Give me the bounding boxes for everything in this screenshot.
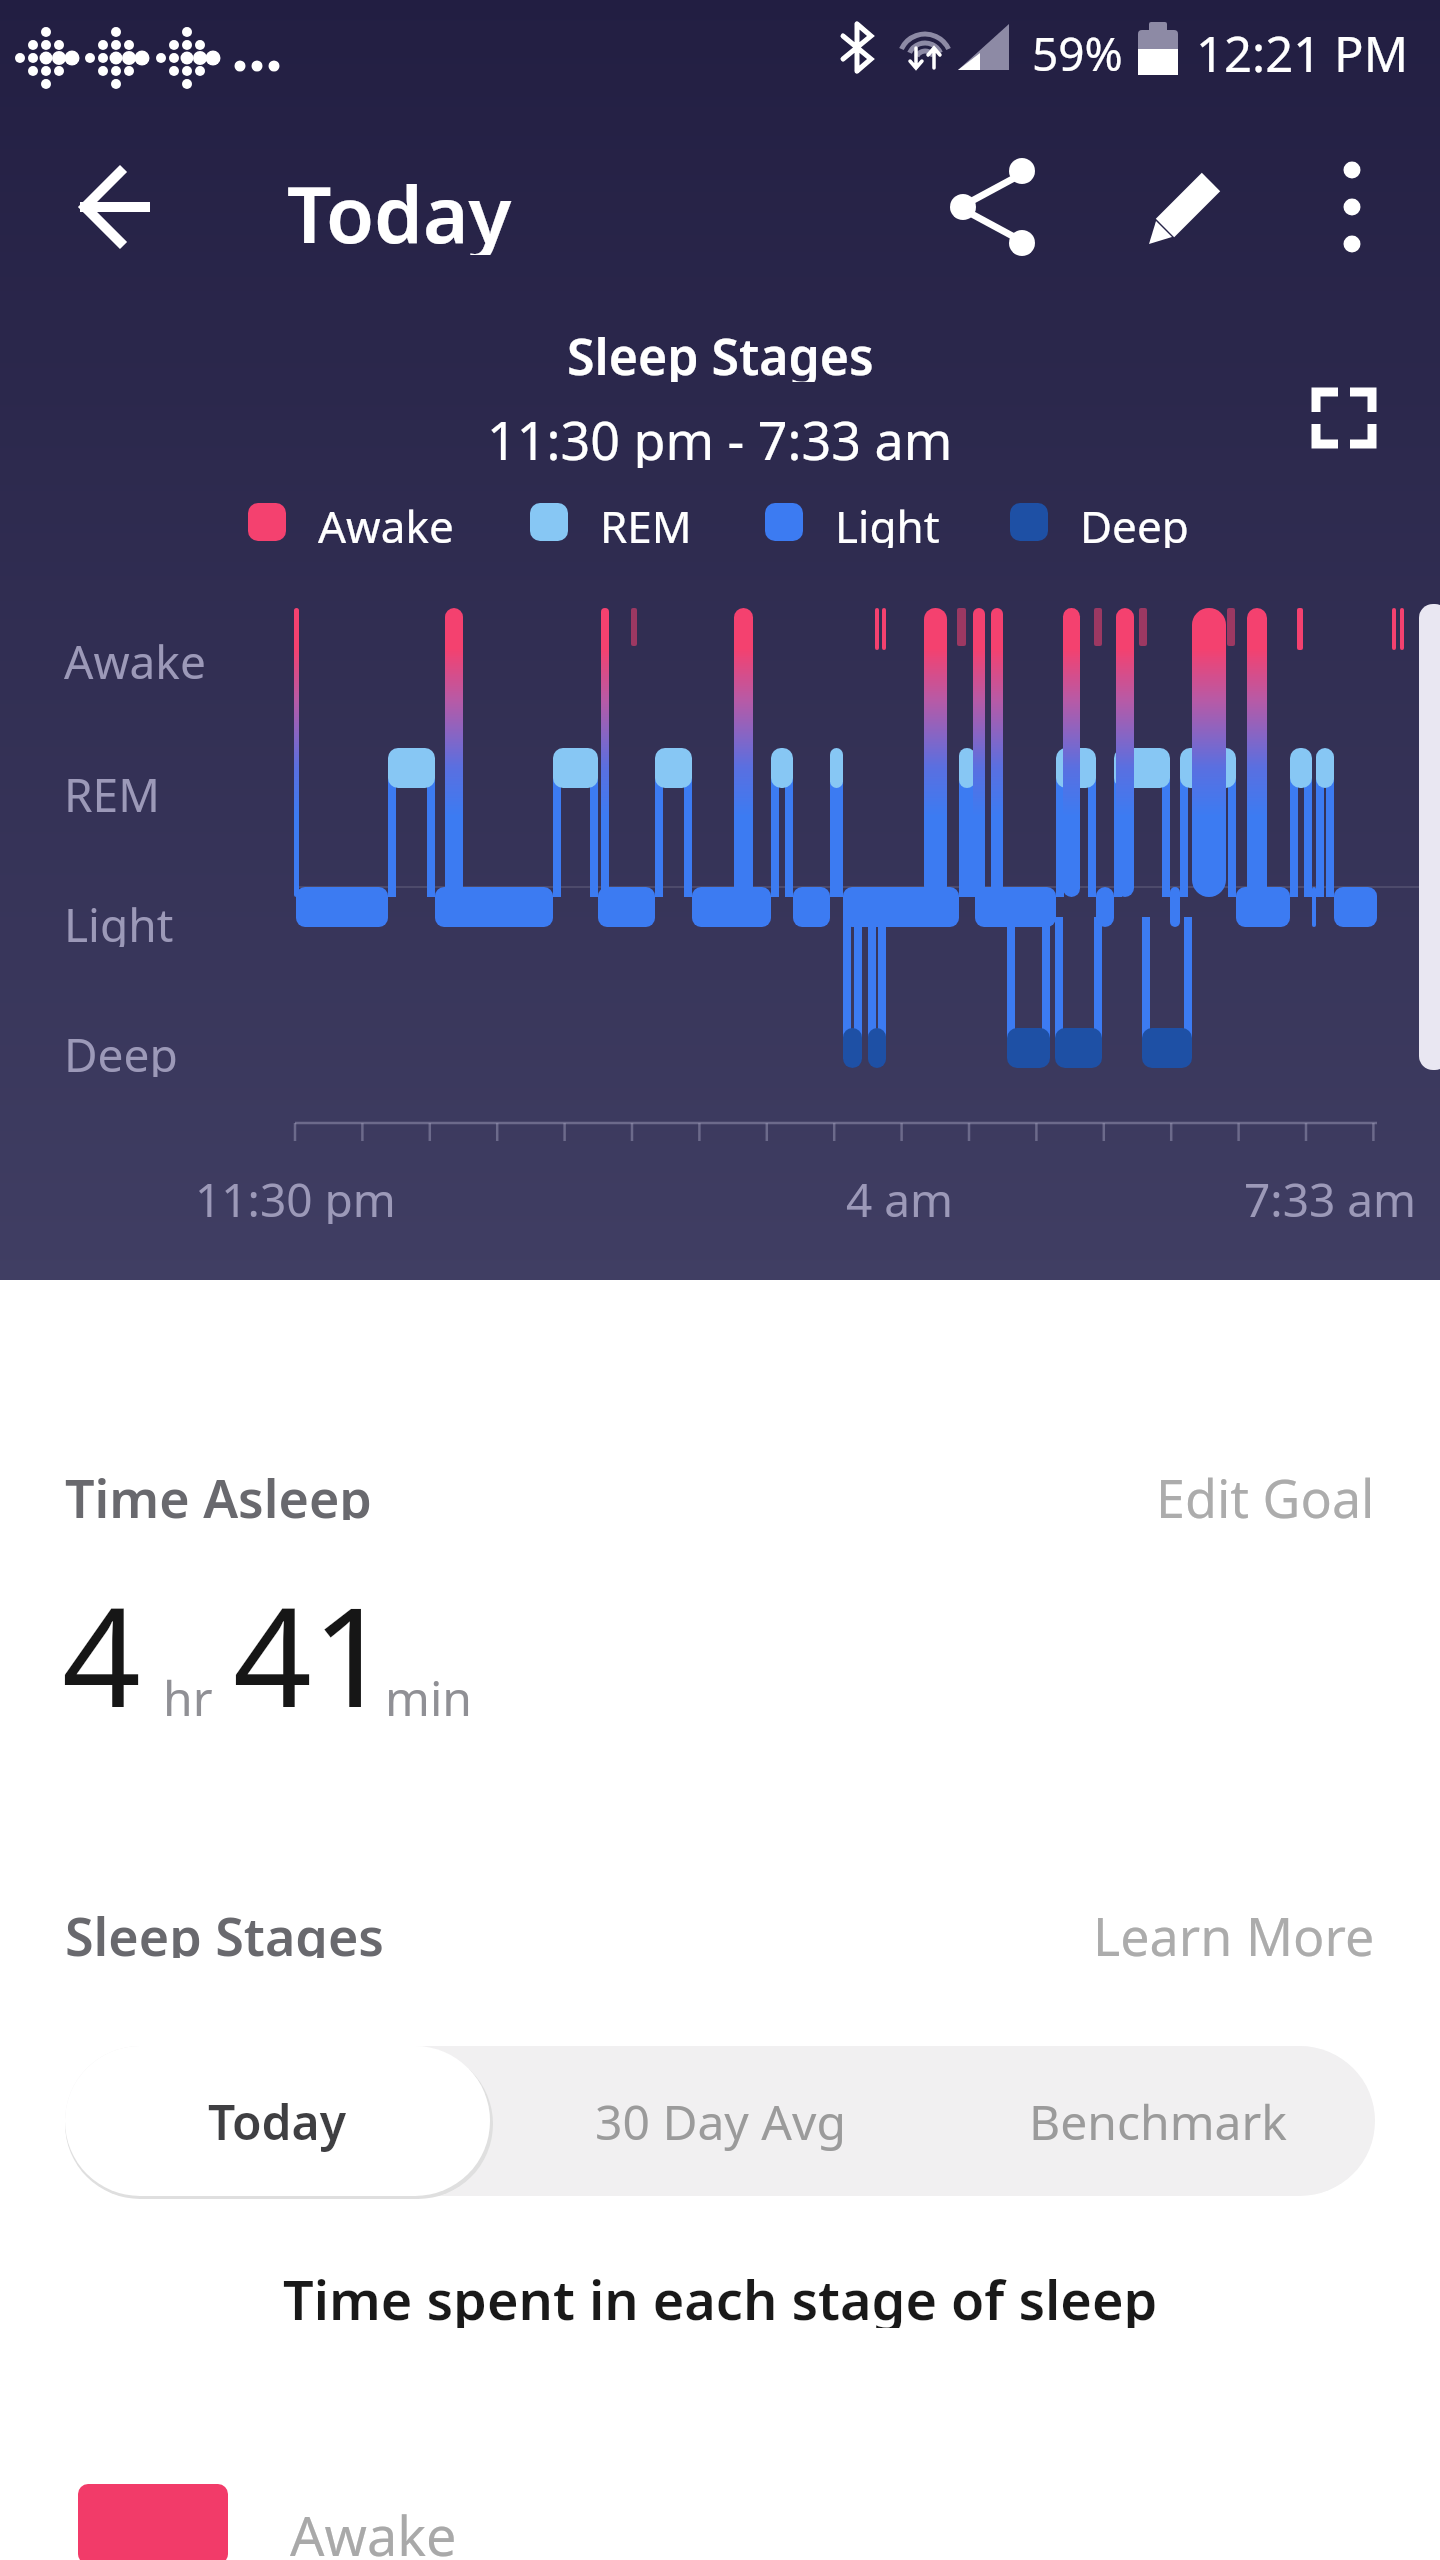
staticText: Time spent in each stage of sleep — [283, 2262, 1158, 2328]
button[interactable]: 30 Day Avg — [505, 2046, 935, 2196]
staticText: Today — [287, 160, 512, 255]
staticText: 59% — [1032, 22, 1123, 72]
button[interactable] — [1125, 150, 1240, 265]
staticText: 4 — [62, 1559, 141, 1709]
staticText: Edit Goal — [1156, 1462, 1375, 1520]
button[interactable]: Today — [287, 160, 587, 255]
staticText: REM — [600, 496, 692, 548]
staticText: 11:30 pm - 7:33 am — [487, 404, 953, 468]
staticText: REM — [64, 763, 160, 817]
button[interactable] — [60, 152, 170, 262]
staticText: Learn More — [1093, 1900, 1375, 1958]
staticText: 7:33 am — [1244, 1168, 1417, 1224]
staticText: Awake — [318, 496, 454, 548]
staticText: Benchmark — [1029, 2089, 1287, 2154]
staticText: 12:21 PM — [1196, 20, 1409, 75]
button[interactable] — [1300, 150, 1405, 265]
button[interactable]: Today — [65, 2046, 490, 2196]
staticText: 11:30 pm — [195, 1168, 396, 1224]
staticText: Today — [208, 2089, 347, 2154]
staticText: hr — [163, 1665, 213, 1730]
staticText: Awake — [64, 630, 206, 684]
staticText: min — [385, 1665, 472, 1730]
button[interactable]: Learn More — [1075, 1900, 1375, 1958]
staticText: 4 am — [846, 1168, 954, 1224]
button[interactable] — [1290, 362, 1400, 472]
staticText: 30 Day Avg — [595, 2089, 846, 2154]
staticText: Sleep Stages — [567, 322, 874, 382]
staticText: Deep — [64, 1023, 178, 1077]
staticText: Time Asleep — [65, 1462, 372, 1520]
button[interactable]: Edit Goal — [1075, 1462, 1375, 1520]
staticText: 41 — [233, 1559, 391, 1709]
button[interactable] — [935, 150, 1050, 265]
button[interactable]: Benchmark — [940, 2046, 1375, 2196]
staticText: Light — [64, 893, 174, 947]
staticText: Light — [835, 496, 940, 548]
staticText: Sleep Stages — [65, 1900, 384, 1958]
staticText: Awake — [290, 2498, 457, 2560]
staticText: Deep — [1080, 496, 1189, 548]
